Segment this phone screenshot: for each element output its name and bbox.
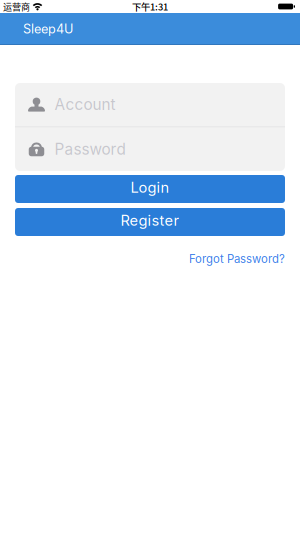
staticText: 运营商 (3, 0, 30, 13)
staticText: 下午1:31 (132, 0, 168, 13)
staticText: Login (130, 179, 169, 196)
button[interactable]: Forgot Password? (189, 252, 285, 266)
staticText: Forgot Password? (189, 252, 285, 266)
secureTextField[interactable]: Password (15, 127, 285, 171)
staticText: Password (54, 140, 125, 159)
staticText: Account (54, 95, 115, 114)
button[interactable]: Login (15, 175, 285, 203)
textField[interactable]: Account (15, 83, 285, 126)
staticText: Sleep4U (23, 21, 73, 37)
button[interactable]: Register (15, 208, 285, 236)
staticText: Register (120, 212, 179, 229)
